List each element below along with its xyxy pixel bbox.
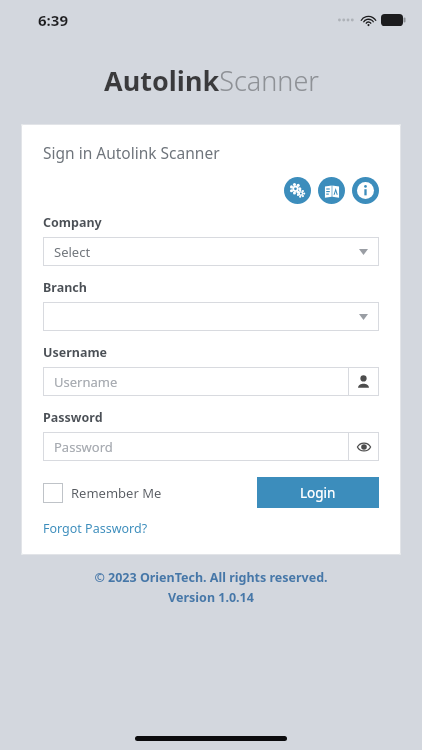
staticText: © 2023 OrienTech. All rights reserved. xyxy=(94,569,328,586)
staticText: Select xyxy=(54,243,91,261)
staticText: Version 1.0.14 xyxy=(168,589,254,606)
button[interactable]: Password xyxy=(348,432,379,461)
button[interactable]: Select xyxy=(43,237,379,266)
staticText: Password xyxy=(54,438,113,456)
staticText: Password xyxy=(43,409,103,426)
button[interactable]: Username xyxy=(348,367,379,396)
staticText: Forgot Password? xyxy=(43,520,148,537)
staticText: 6:39 xyxy=(38,10,68,30)
staticText: Company xyxy=(43,214,102,231)
staticText: Login xyxy=(300,484,336,502)
button[interactable]: Information xyxy=(352,177,379,204)
staticText: Username xyxy=(43,344,108,361)
button[interactable]: Forgot Password? xyxy=(43,520,148,537)
button[interactable]: Language xyxy=(318,177,345,204)
staticText: Username xyxy=(54,373,118,391)
staticText: Branch xyxy=(43,279,87,296)
staticText: Sign in Autolink Scanner xyxy=(43,142,220,163)
button[interactable]: Login xyxy=(257,477,379,508)
staticText: AutolinkScanner xyxy=(104,62,319,99)
button[interactable]: Remember Me xyxy=(43,483,162,503)
button[interactable] xyxy=(43,302,379,331)
button[interactable]: Settings xyxy=(284,177,311,204)
staticText: Remember Me xyxy=(71,484,162,502)
